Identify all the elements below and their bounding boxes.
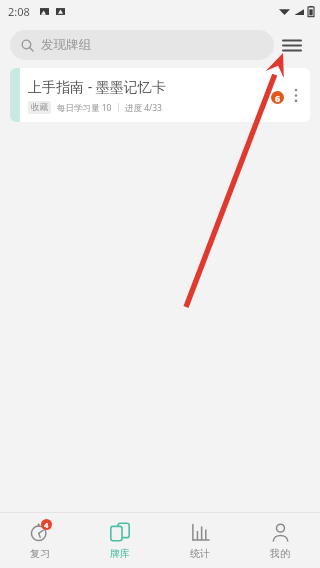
button[interactable]: Menu [274,27,310,63]
button[interactable]: 我的 [240,513,320,568]
button[interactable]: 统计 [160,513,240,568]
button[interactable]: 发现牌组 [10,30,274,60]
button[interactable]: 牌库 [80,513,160,568]
staticText: 发现牌组 [41,37,91,53]
staticText: 每日学习量 10 [57,102,112,114]
staticText: 牌库 [110,547,130,560]
staticText: 2:08 [8,4,30,19]
button[interactable]: 4 [0,513,80,568]
staticText: 4 [44,520,49,530]
staticText: 复习 [30,547,50,560]
button[interactable]: 上手指南 - 墨墨记忆卡 [10,68,310,122]
staticText: 6 [275,92,281,104]
staticText: 统计 [190,547,210,560]
staticText: 上手指南 - 墨墨记忆卡 [28,77,166,96]
button[interactable]: More options [282,68,310,122]
staticText: 收藏 [31,102,48,113]
staticText: 进度 4/33 [125,102,162,114]
staticText: 我的 [270,547,290,560]
